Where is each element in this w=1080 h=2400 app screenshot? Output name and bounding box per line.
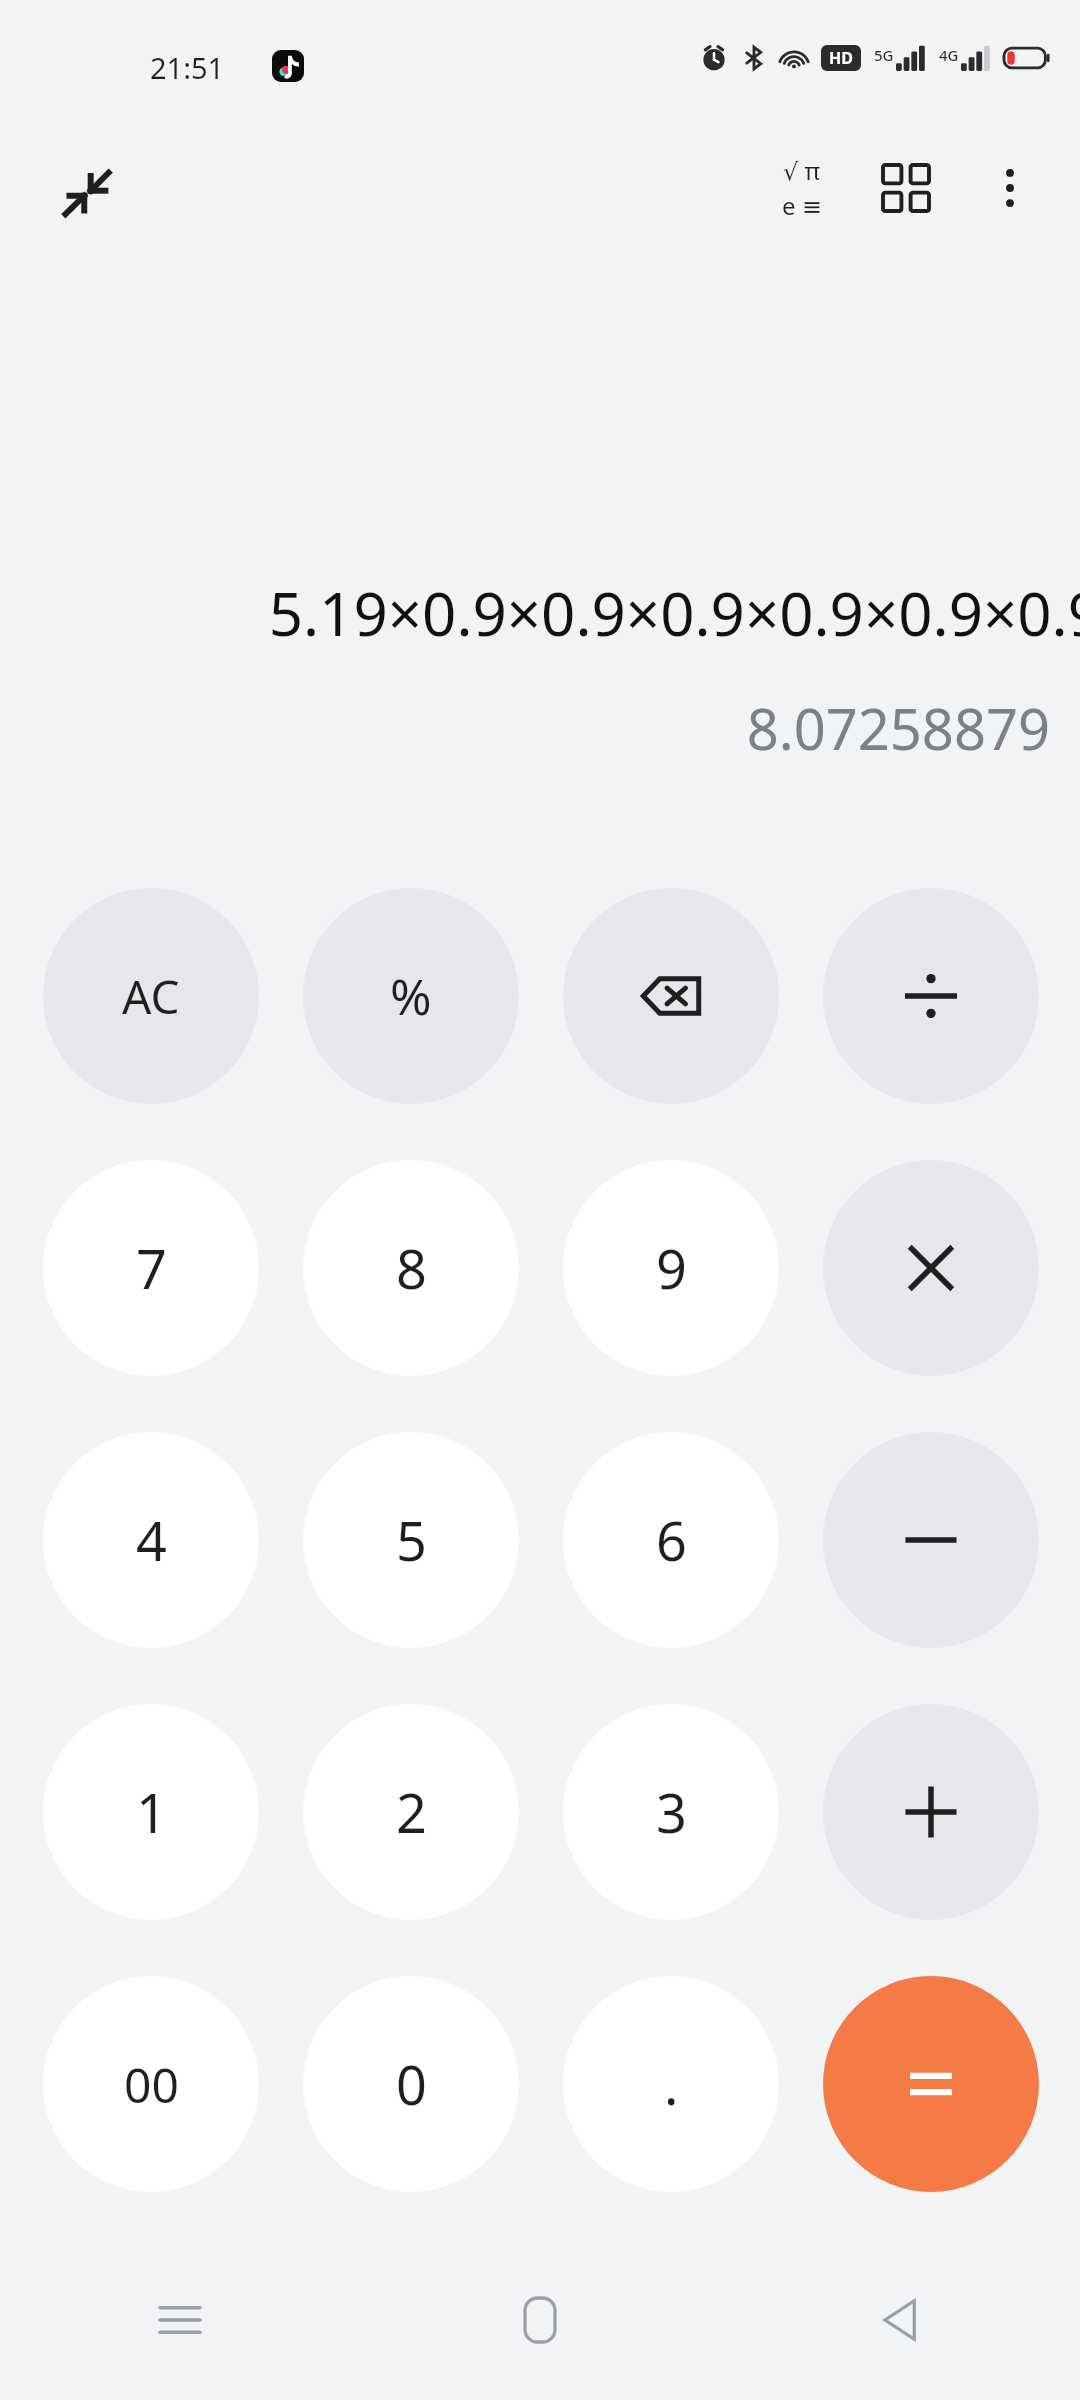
- staticText: 3: [656, 1775, 687, 1849]
- staticText: 5G: [874, 45, 894, 65]
- button[interactable]: More options: [958, 136, 1062, 240]
- button[interactable]: 6: [563, 1432, 779, 1648]
- button[interactable]: Equals: [823, 1976, 1039, 2192]
- staticText: 0: [396, 2047, 427, 2121]
- button[interactable]: Unit converter: [854, 136, 958, 240]
- staticText: 00: [124, 2052, 179, 2117]
- button[interactable]: AC: [43, 888, 259, 1104]
- staticText: 4G: [939, 45, 959, 65]
- button[interactable]: Home: [360, 2240, 720, 2400]
- button[interactable]: Collapse: [46, 152, 128, 234]
- staticText: 9: [656, 1231, 687, 1305]
- staticText: .: [664, 2047, 679, 2121]
- button[interactable]: .: [563, 1976, 779, 2192]
- button[interactable]: Add: [823, 1704, 1039, 1920]
- button[interactable]: Backspace: [563, 888, 779, 1104]
- button[interactable]: 5: [303, 1432, 519, 1648]
- staticText: 8.07258879: [746, 690, 1050, 766]
- button[interactable]: 7: [43, 1160, 259, 1376]
- button[interactable]: 8: [303, 1160, 519, 1376]
- staticText: 4: [136, 1503, 167, 1577]
- button[interactable]: Subtract: [823, 1432, 1039, 1648]
- button[interactable]: Divide: [823, 888, 1039, 1104]
- staticText: AC: [122, 965, 180, 1028]
- button[interactable]: 3: [563, 1704, 779, 1920]
- staticText: 8: [396, 1231, 427, 1305]
- staticText: 21:51: [150, 48, 225, 87]
- button[interactable]: 1: [43, 1704, 259, 1920]
- button[interactable]: Scientific mode: [750, 136, 854, 240]
- button[interactable]: 0: [303, 1976, 519, 2192]
- button[interactable]: Recent apps: [0, 2240, 360, 2400]
- staticText: HD: [829, 47, 853, 69]
- staticText: 7: [136, 1231, 167, 1305]
- button[interactable]: %: [303, 888, 519, 1104]
- staticText: %: [390, 962, 432, 1030]
- staticText: 5: [396, 1503, 427, 1577]
- button[interactable]: 9: [563, 1160, 779, 1376]
- button[interactable]: Multiply: [823, 1160, 1039, 1376]
- staticText: e ≡: [782, 189, 822, 222]
- staticText: 6: [656, 1503, 687, 1577]
- staticText: 2: [396, 1775, 427, 1849]
- button[interactable]: 2: [303, 1704, 519, 1920]
- button[interactable]: Back: [720, 2240, 1080, 2400]
- staticText: 1: [136, 1775, 167, 1849]
- staticText: 5.19×0.9×0.9×0.9×0.9×0.9×0.9: [268, 572, 1080, 654]
- staticText: √ π: [783, 154, 821, 187]
- button[interactable]: 4: [43, 1432, 259, 1648]
- button[interactable]: 00: [43, 1976, 259, 2192]
